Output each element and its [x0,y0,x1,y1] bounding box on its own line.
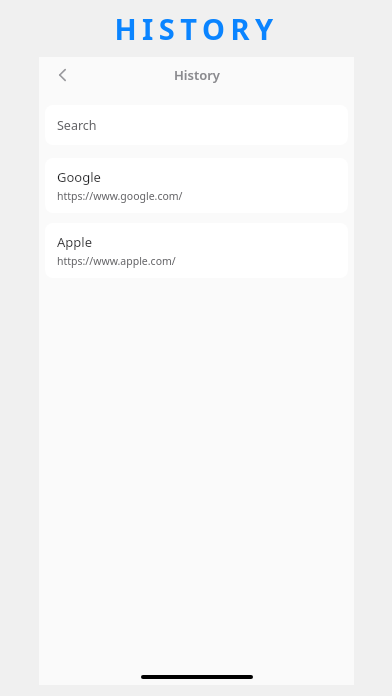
staticText: Google [57,168,101,186]
button[interactable]: Apple [45,223,348,278]
button[interactable]: Back [48,60,78,90]
staticText: HISTORY [114,9,279,48]
staticText: Search [57,117,97,134]
staticText: https://www.google.com/ [57,189,183,203]
button[interactable]: Search [45,105,348,145]
staticText: History [174,66,220,84]
staticText: Apple [57,233,92,251]
staticText: https://www.apple.com/ [57,254,176,268]
button[interactable]: Google [45,158,348,213]
